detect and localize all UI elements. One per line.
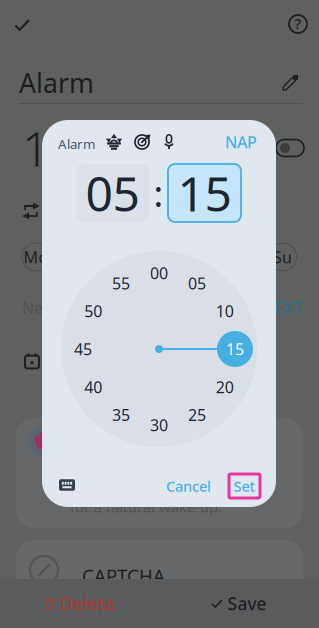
staticText: 35 <box>112 404 130 425</box>
staticText: 00 <box>150 262 168 284</box>
staticText: Su <box>273 246 292 268</box>
staticText: Th <box>150 246 169 268</box>
button[interactable]: NAP <box>224 131 258 153</box>
staticText: 40 <box>84 376 102 398</box>
staticText: ? <box>294 14 301 33</box>
button[interactable]: Sunrise alarm <box>103 131 125 153</box>
staticText: Nature sounds <box>70 432 191 455</box>
button[interactable]: Th <box>145 243 173 271</box>
staticText: 50 <box>84 300 102 322</box>
staticText: Next alarm in 14 h 25 min <box>22 297 214 318</box>
staticText: Mo <box>23 246 48 268</box>
staticText: Cancel <box>166 476 211 496</box>
button[interactable]: Save <box>159 579 319 628</box>
button[interactable]: Done <box>2 5 42 45</box>
staticText: Save <box>227 592 266 615</box>
button[interactable]: Set <box>229 474 260 498</box>
staticText: We <box>106 246 130 268</box>
button[interactable]: Help <box>278 4 318 44</box>
staticText: NAP <box>225 131 257 153</box>
staticText: Alarm <box>58 135 95 153</box>
button[interactable]: Enable alarm <box>273 136 307 160</box>
staticText: 15 <box>226 338 244 360</box>
button[interactable]: Su <box>269 243 297 271</box>
staticText: : <box>153 169 163 217</box>
staticText: 45 <box>74 338 92 360</box>
staticText: Alarm <box>19 65 94 100</box>
staticText: Delete <box>60 592 115 615</box>
staticText: 15 <box>177 161 231 225</box>
staticText: CAPTCHA <box>82 563 165 588</box>
button[interactable]: Switch to text input <box>54 472 80 498</box>
staticText: for a natural wake-up. <box>70 497 222 516</box>
staticText: Set <box>233 476 255 496</box>
button[interactable]: Cancel <box>166 474 211 498</box>
button[interactable]: We <box>104 243 132 271</box>
button[interactable]: Alarm <box>19 66 303 108</box>
button[interactable]: Voice alarm <box>158 131 180 153</box>
staticText: 10 <box>216 300 234 322</box>
staticText: Fr <box>193 246 208 268</box>
staticText: 05 <box>85 161 139 225</box>
button[interactable]: Mo <box>22 243 50 271</box>
button[interactable]: 15 <box>168 164 241 222</box>
button[interactable]: 05 <box>76 164 149 222</box>
staticText: 20 <box>216 376 234 398</box>
staticText: Ring on workdays only <box>56 354 241 377</box>
staticText: 10:15 <box>22 116 142 180</box>
button[interactable]: NEXT <box>263 297 303 318</box>
button[interactable]: Goal alarm <box>131 131 153 153</box>
staticText: 30 <box>150 414 168 436</box>
staticText: 55 <box>112 273 130 294</box>
button[interactable]: Delete <box>0 579 159 628</box>
staticText: NEXT <box>263 297 303 318</box>
staticText: 05 <box>188 273 206 294</box>
button[interactable]: Fr <box>186 243 214 271</box>
staticText: 25 <box>188 404 206 425</box>
